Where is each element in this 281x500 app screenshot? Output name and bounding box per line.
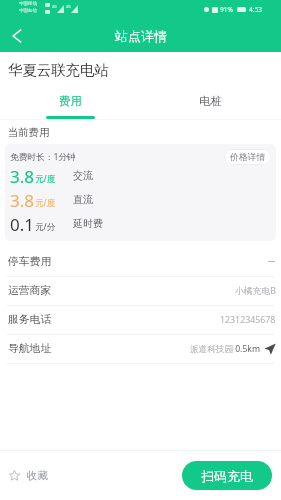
- button[interactable]: 服务电话: [0, 305, 281, 334]
- staticText: 扫码充电: [201, 468, 253, 484]
- staticText: 中国移动: [19, 1, 37, 7]
- staticText: 12312345678: [220, 314, 276, 326]
- staticText: 元/分: [35, 221, 56, 233]
- staticText: 停车费用: [8, 255, 52, 269]
- staticText: 4G: [66, 4, 71, 9]
- staticText: 站点详情: [115, 28, 167, 44]
- staticText: 交流: [73, 169, 93, 182]
- staticText: 免费时长：1分钟: [10, 151, 76, 163]
- staticText: 3.8: [10, 189, 35, 211]
- staticText: 费用: [59, 94, 82, 108]
- button[interactable]: 扫码充电: [182, 461, 272, 490]
- button[interactable]: 运营商家: [0, 276, 281, 305]
- staticText: 当前费用: [8, 126, 50, 139]
- staticText: 4G: [52, 4, 57, 9]
- staticText: 派道科技园 0.5km: [190, 343, 260, 355]
- staticText: 小橘充电B: [235, 285, 276, 297]
- button[interactable]: 导航地址: [0, 334, 281, 363]
- staticText: 运营商家: [8, 284, 52, 298]
- staticText: 价格详情: [230, 152, 266, 163]
- staticText: 元/度: [35, 197, 56, 209]
- staticText: 4:53: [249, 5, 262, 14]
- staticText: 服务电话: [8, 313, 52, 327]
- staticText: 中国电信: [19, 8, 37, 14]
- button[interactable]: 电桩: [140, 88, 281, 117]
- button[interactable]: 收藏: [5, 463, 52, 488]
- staticText: 电桩: [199, 94, 222, 108]
- staticText: 收藏: [27, 469, 48, 482]
- staticText: 0.1: [10, 213, 35, 235]
- staticText: 直流: [73, 193, 93, 206]
- staticText: 延时费: [73, 217, 103, 230]
- button[interactable]: 价格详情: [224, 149, 271, 165]
- button[interactable]: Back: [3, 22, 31, 50]
- staticText: 91%: [220, 5, 233, 14]
- staticText: 3.8: [10, 165, 35, 187]
- button[interactable]: 费用: [0, 88, 140, 117]
- staticText: 导航地址: [8, 342, 52, 356]
- staticText: 华夏云联充电站: [8, 61, 109, 79]
- staticText: 元/度: [35, 173, 56, 185]
